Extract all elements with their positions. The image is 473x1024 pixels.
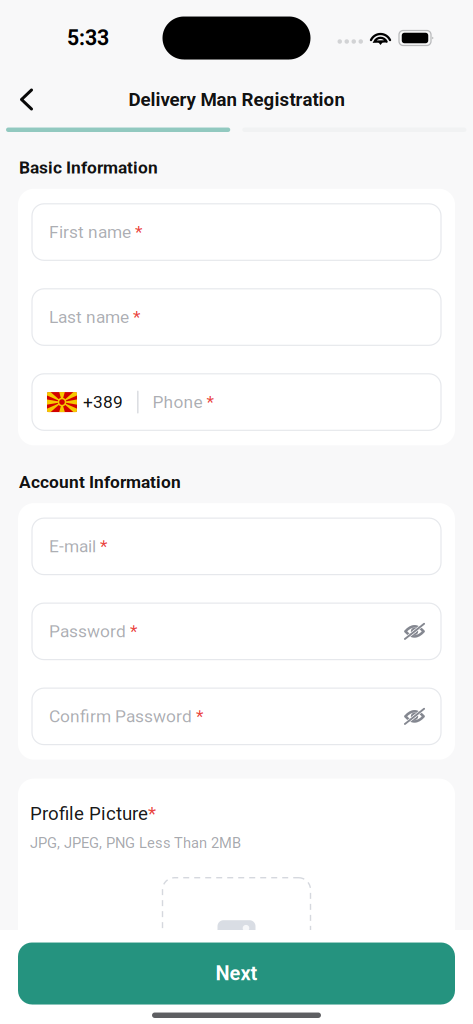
staticText: Profile Picture [30, 803, 148, 824]
staticText: First name [49, 222, 131, 242]
button[interactable]: Next [18, 942, 455, 1004]
staticText: Phone [153, 392, 203, 412]
staticText: * [148, 803, 156, 824]
button[interactable]: First name [32, 204, 441, 260]
staticText: Password [49, 621, 126, 641]
staticText: * [203, 392, 214, 412]
staticText: Confirm Password [49, 706, 192, 726]
staticText: Last name [49, 307, 129, 327]
button[interactable]: Last name [32, 289, 441, 345]
button[interactable]: +389 [32, 374, 441, 430]
staticText: Delivery Man Registration [128, 89, 344, 110]
staticText: 5:33 [67, 25, 109, 50]
button[interactable]: Confirm Password [32, 688, 441, 745]
staticText: * [129, 307, 140, 327]
staticText: E-mail [49, 536, 96, 556]
staticText: * [131, 222, 142, 242]
staticText: * [126, 621, 137, 641]
button[interactable]: E-mail [32, 518, 441, 575]
button[interactable]: Password [32, 603, 441, 660]
staticText: * [96, 536, 107, 556]
staticText: Next [215, 962, 257, 985]
staticText: Basic Information [19, 157, 158, 178]
button[interactable]: Back [0, 78, 48, 120]
staticText: Account Information [19, 472, 181, 492]
staticText: JPG, JPEG, PNG Less Than 2MB [30, 834, 241, 852]
staticText: * [192, 706, 203, 726]
staticText: +389 [83, 392, 123, 412]
